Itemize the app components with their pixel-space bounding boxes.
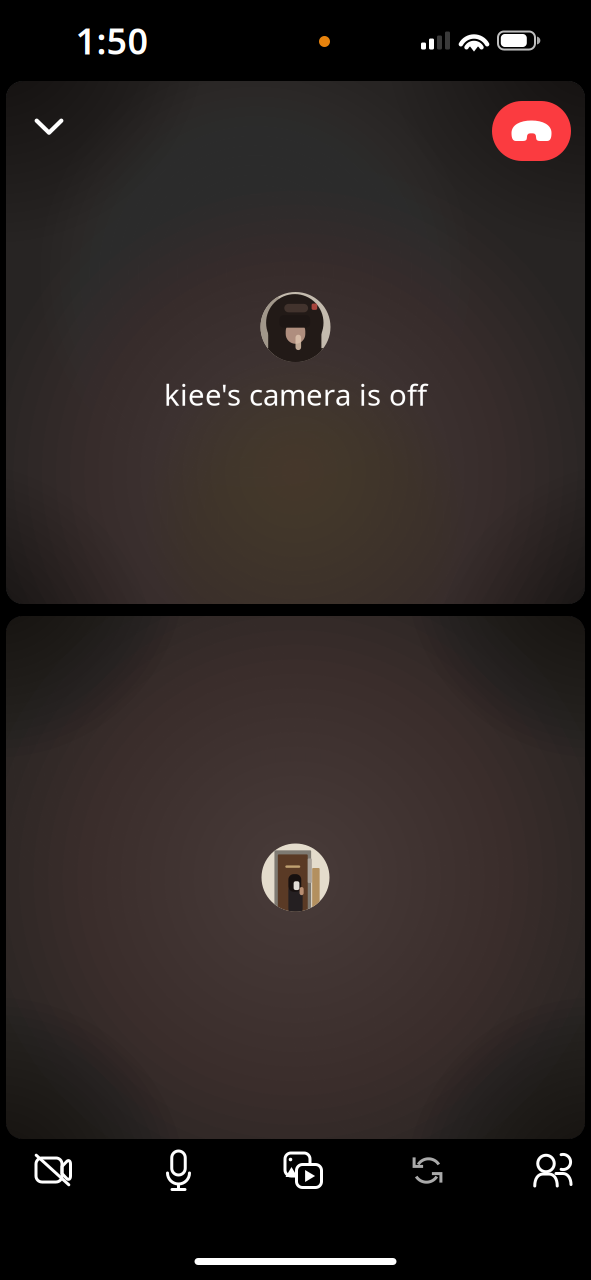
button[interactable]: Flip camera bbox=[382, 1142, 472, 1198]
button[interactable]: Participants bbox=[507, 1142, 591, 1198]
staticText: kiee's camera is off bbox=[164, 375, 427, 414]
button[interactable]: Minimize call bbox=[17, 101, 81, 153]
button[interactable]: SharePlay bbox=[258, 1142, 348, 1198]
button[interactable]: Turn camera on bbox=[9, 1142, 99, 1198]
staticText: 1:50 bbox=[75, 17, 148, 64]
button[interactable]: End call bbox=[492, 101, 571, 161]
button[interactable]: Mute microphone bbox=[133, 1142, 223, 1198]
